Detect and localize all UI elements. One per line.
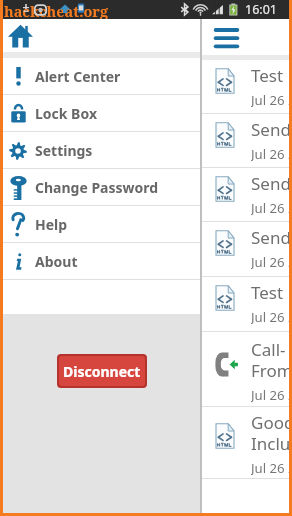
button[interactable]: About bbox=[3, 243, 200, 280]
button[interactable]: Change Password bbox=[3, 169, 200, 206]
button[interactable]: Send bbox=[202, 114, 289, 168]
button[interactable]: Help bbox=[3, 206, 200, 243]
staticText: Send bbox=[251, 226, 289, 249]
staticText: Jul 26 2 bbox=[251, 253, 289, 271]
button[interactable]: Lock Box bbox=[3, 95, 200, 132]
staticText: Help bbox=[35, 215, 68, 234]
staticText: Jul 26 2 bbox=[251, 145, 289, 163]
staticText: Send bbox=[251, 118, 289, 141]
staticText: Jul 26 2 bbox=[251, 386, 289, 404]
staticText: Lock Box bbox=[35, 104, 97, 123]
staticText: Disconnect bbox=[63, 362, 141, 381]
button[interactable]: Call- From- bbox=[202, 332, 289, 407]
staticText: Jul 26 2 bbox=[251, 459, 289, 477]
staticText: Good Includ bbox=[251, 411, 289, 455]
staticText: Jul 26 2 bbox=[251, 308, 289, 326]
staticText: Test M bbox=[251, 64, 289, 87]
staticText: Send bbox=[251, 172, 289, 195]
staticText: Jul 26 2 bbox=[251, 91, 289, 109]
staticText: hackcheat.org bbox=[4, 1, 109, 20]
staticText: Test bbox=[251, 281, 284, 304]
button[interactable]: Settings bbox=[3, 132, 200, 169]
staticText: Jul 26 2 bbox=[251, 199, 289, 217]
button[interactable]: Open navigation menu bbox=[213, 24, 239, 50]
button[interactable]: Test M bbox=[202, 60, 289, 114]
button[interactable]: Home bbox=[7, 23, 33, 49]
button[interactable]: Alert Center bbox=[3, 58, 200, 95]
button[interactable]: Send bbox=[202, 222, 289, 277]
staticText: About bbox=[35, 252, 78, 271]
button[interactable]: Send bbox=[202, 168, 289, 222]
button[interactable]: Good Includ bbox=[202, 407, 289, 479]
staticText: Alert Center bbox=[35, 67, 121, 86]
staticText: Settings bbox=[35, 141, 93, 160]
staticText: 16:01 bbox=[245, 1, 277, 18]
button[interactable]: Disconnect bbox=[59, 356, 145, 386]
button[interactable]: Test bbox=[202, 277, 289, 332]
staticText: Change Password bbox=[35, 178, 159, 197]
staticText: Call- From- bbox=[251, 338, 289, 382]
